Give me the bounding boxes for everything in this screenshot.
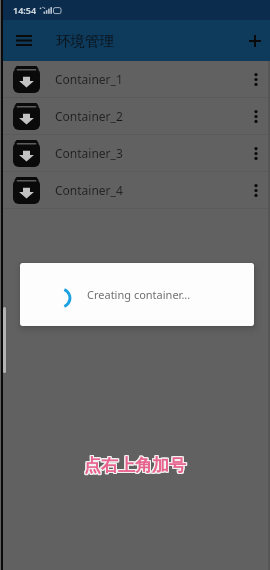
button[interactable]: Container_2 — [3, 98, 270, 134]
button[interactable]: More options — [243, 173, 269, 208]
staticText: 点右上角加号 — [84, 455, 186, 476]
button[interactable]: Container_4 — [3, 172, 270, 208]
staticText: 点右上角加号 — [83, 455, 185, 476]
button[interactable]: Container_3 — [3, 135, 270, 171]
staticText: Container_3 — [55, 145, 123, 161]
staticText: 点右上角加号 — [85, 455, 187, 476]
staticText: 点右上角加号 — [83, 456, 185, 477]
staticText: 点右上角加号 — [83, 454, 185, 475]
staticText: Container_1 — [55, 71, 123, 87]
staticText: Container_2 — [55, 108, 123, 124]
staticText: Container_4 — [55, 182, 123, 198]
staticText: 点右上角加号 — [84, 454, 186, 475]
staticText: 点右上角加号 — [85, 456, 187, 477]
button[interactable]: Container_1 — [3, 61, 270, 97]
staticText: 14:54 — [13, 4, 37, 16]
staticText: 点右上角加号 — [84, 456, 186, 477]
button[interactable]: Add — [241, 20, 269, 61]
staticText: Creating container... — [87, 287, 191, 302]
staticText: 环境管理 — [56, 32, 114, 50]
button[interactable]: More options — [243, 99, 269, 134]
button[interactable]: More options — [243, 136, 269, 171]
staticText: 点右上角加号 — [85, 454, 187, 475]
button[interactable]: Menu — [3, 20, 45, 61]
button[interactable]: More options — [243, 62, 269, 97]
